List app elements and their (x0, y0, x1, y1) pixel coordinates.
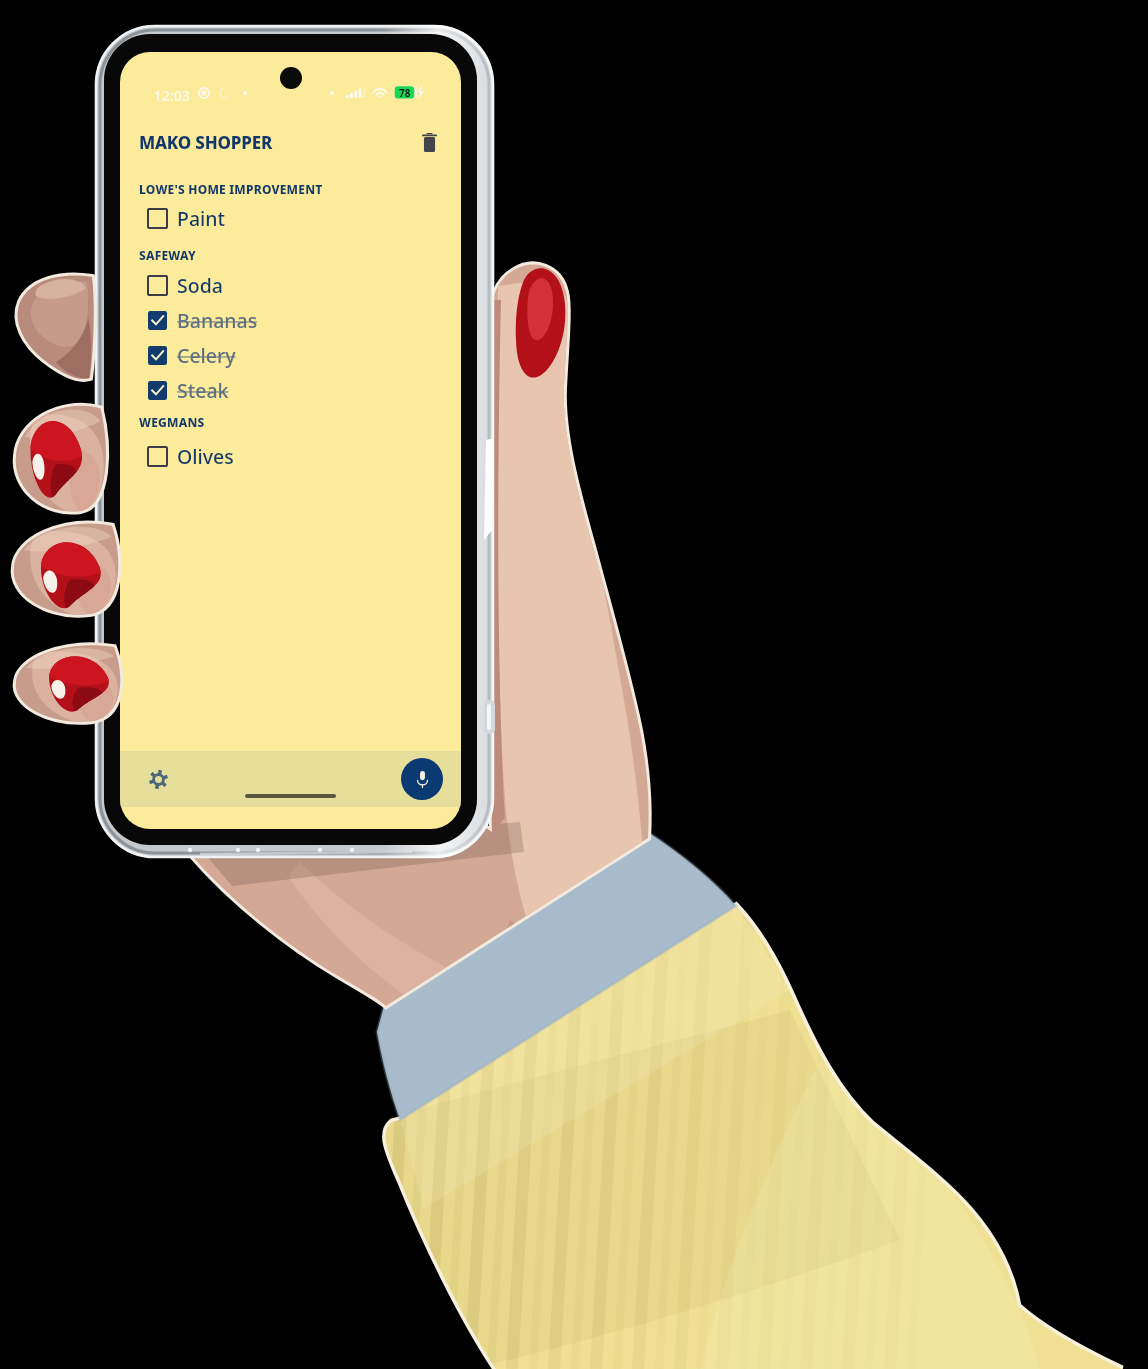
button[interactable]: Settings (145, 766, 171, 792)
button[interactable]: Add item by voice (401, 758, 443, 800)
staticText: LOWE'S HOME IMPROVEMENT (139, 181, 323, 197)
button[interactable]: Olives (120, 439, 461, 474)
staticText: MAKO SHOPPER (139, 131, 273, 154)
staticText: Olives (177, 443, 234, 470)
staticText: 78 (399, 86, 411, 100)
staticText: Celery (177, 342, 236, 369)
button[interactable]: Soda (120, 268, 461, 303)
button[interactable]: Bananas (120, 303, 461, 338)
staticText: Paint (177, 205, 226, 232)
button[interactable]: Paint (120, 201, 461, 236)
button[interactable]: Celery (120, 338, 461, 373)
staticText: 12:03 (154, 86, 190, 105)
staticText: WEGMANS (139, 414, 205, 430)
staticText: SAFEWAY (139, 247, 196, 263)
button[interactable]: Delete list (415, 128, 443, 156)
staticText: Steak (177, 377, 229, 404)
staticText: Soda (177, 272, 223, 299)
staticText: Bananas (177, 307, 258, 334)
button[interactable]: Steak (120, 373, 461, 408)
